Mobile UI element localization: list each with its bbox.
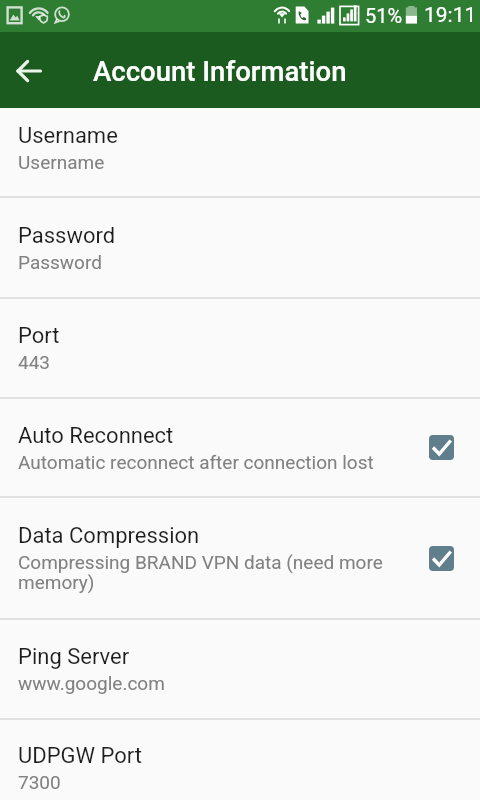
staticText: UDPGW Port <box>18 743 143 769</box>
staticText: 443 <box>18 351 51 373</box>
button[interactable]: Toggle Auto Reconnect <box>429 435 454 460</box>
staticText: Account Information <box>93 55 347 87</box>
button[interactable]: Back <box>8 51 48 91</box>
staticText: www.google.com <box>18 672 165 694</box>
staticText: Compressing BRAND VPN data (need more me… <box>18 551 413 593</box>
staticText: 19:11 <box>424 3 477 28</box>
staticText: Username <box>18 151 105 173</box>
button[interactable]: Ping Server <box>0 620 480 718</box>
staticText: Port <box>18 323 60 349</box>
staticText: Auto Reconnect <box>18 423 174 449</box>
button[interactable]: Username <box>0 108 480 196</box>
staticText: Data Compression <box>18 523 200 549</box>
staticText: 7300 <box>18 771 61 793</box>
button[interactable]: Toggle Data Compression <box>429 546 454 571</box>
staticText: Automatic reconnect after connection los… <box>18 451 374 473</box>
button[interactable]: Port <box>0 299 480 397</box>
button[interactable]: Password <box>0 198 480 297</box>
staticText: Ping Server <box>18 644 130 670</box>
staticText: Password <box>18 251 102 273</box>
button[interactable]: Data Compression <box>0 498 480 618</box>
staticText: 51% <box>365 4 403 27</box>
staticText: Username <box>18 123 118 149</box>
staticText: Password <box>18 223 116 249</box>
button[interactable]: UDPGW Port <box>0 720 480 800</box>
button[interactable]: Auto Reconnect <box>0 399 480 496</box>
